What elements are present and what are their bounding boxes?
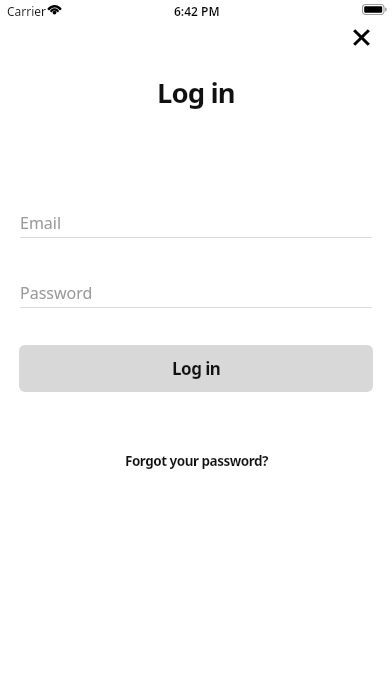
button[interactable]: Password bbox=[20, 278, 372, 308]
staticText: Carrier bbox=[7, 3, 47, 19]
button[interactable] bbox=[345, 21, 377, 53]
button[interactable]: Email bbox=[20, 208, 372, 238]
staticText: Forgot your password? bbox=[125, 452, 268, 470]
staticText: Log in bbox=[172, 357, 221, 380]
staticText: Email bbox=[20, 212, 62, 234]
staticText: Log in bbox=[157, 74, 235, 111]
staticText: Password bbox=[20, 282, 93, 304]
button[interactable]: Forgot your password? bbox=[125, 452, 268, 470]
staticText: 6:42 PM bbox=[174, 3, 220, 19]
button[interactable]: Log in bbox=[19, 345, 373, 392]
